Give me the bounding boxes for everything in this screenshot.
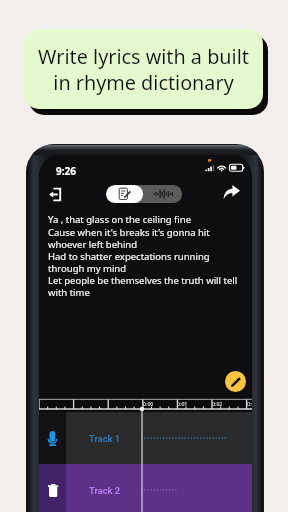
staticText: 0:02 xyxy=(212,400,223,407)
button[interactable]: Audio tracks xyxy=(143,185,182,203)
button[interactable]: Track 2 xyxy=(39,464,252,512)
staticText: 0:03 xyxy=(247,400,252,407)
button[interactable]: Exit xyxy=(42,181,68,207)
staticText: Write lyrics with a built in rhyme dicti… xyxy=(38,43,249,95)
staticText: Ya , that glass on the ceiling fine Caus… xyxy=(48,213,238,298)
button[interactable]: Edit xyxy=(225,371,246,392)
button[interactable]: Share xyxy=(221,181,242,202)
staticText: 0:01 xyxy=(177,400,188,407)
button[interactable]: Track 1 xyxy=(39,412,252,464)
button[interactable]: Lyrics editor xyxy=(106,185,143,203)
staticText: Track 2 xyxy=(89,485,121,496)
button[interactable]: Write lyrics with a built in rhyme dicti… xyxy=(24,29,263,109)
staticText: Track 1 xyxy=(89,433,121,444)
staticText: 0:00 xyxy=(143,400,154,407)
staticText: 9:26 xyxy=(56,164,76,178)
